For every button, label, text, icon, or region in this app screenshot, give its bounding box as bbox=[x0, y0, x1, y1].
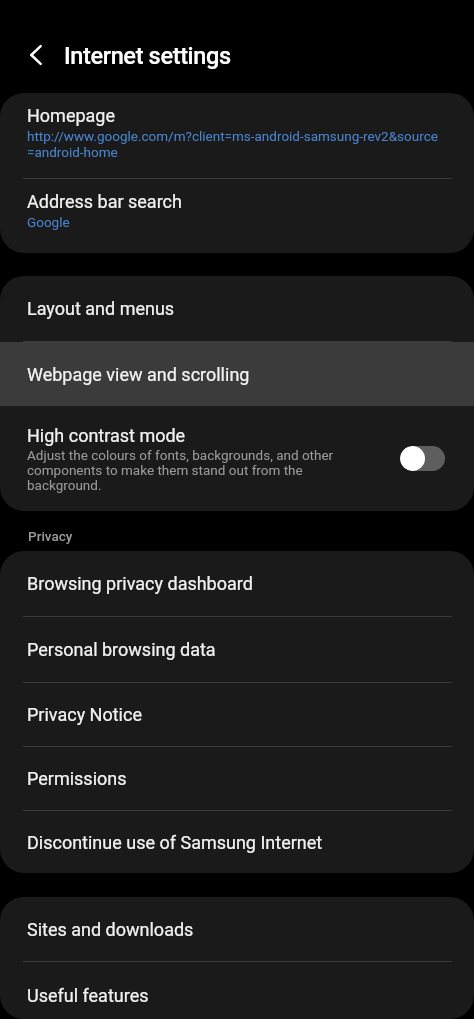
button[interactable]: Browsing privacy dashboard bbox=[0, 551, 474, 616]
button[interactable]: Back bbox=[17, 36, 55, 74]
button[interactable]: Privacy Notice bbox=[0, 683, 474, 746]
button[interactable]: High contrast mode bbox=[0, 406, 474, 511]
button[interactable]: Discontinue use of Samsung Internet bbox=[0, 811, 474, 873]
staticText: Webpage view and scrolling bbox=[27, 364, 250, 385]
button[interactable]: Webpage view and scrolling bbox=[0, 342, 474, 406]
button[interactable]: Sites and downloads bbox=[0, 897, 474, 961]
staticText: Homepage bbox=[27, 105, 115, 126]
button[interactable]: Personal browsing data bbox=[0, 617, 474, 682]
staticText: Adjust the colours of fonts, backgrounds… bbox=[27, 448, 334, 493]
button[interactable]: Layout and menus bbox=[0, 276, 474, 341]
staticText: Sites and downloads bbox=[27, 919, 194, 940]
button[interactable]: Address bar search bbox=[0, 179, 474, 253]
button[interactable]: Permissions bbox=[0, 747, 474, 810]
staticText: Layout and menus bbox=[27, 298, 175, 319]
button[interactable]: Homepage bbox=[0, 93, 474, 178]
staticText: Discontinue use of Samsung Internet bbox=[27, 832, 323, 853]
button[interactable]: Useful features bbox=[0, 962, 474, 1019]
staticText: Privacy Notice bbox=[27, 704, 142, 725]
staticText: Browsing privacy dashboard bbox=[27, 573, 253, 594]
button[interactable]: High contrast mode, off bbox=[400, 446, 445, 471]
staticText: Personal browsing data bbox=[27, 639, 216, 660]
staticText: Address bar search bbox=[27, 191, 182, 212]
staticText: Privacy bbox=[28, 528, 73, 544]
staticText: Internet settings bbox=[64, 42, 231, 70]
staticText: http://www.google.com/m?client=ms-androi… bbox=[27, 128, 438, 160]
staticText: Google bbox=[27, 214, 70, 230]
staticText: High contrast mode bbox=[27, 425, 186, 446]
staticText: Useful features bbox=[27, 985, 149, 1006]
staticText: Permissions bbox=[27, 768, 127, 789]
